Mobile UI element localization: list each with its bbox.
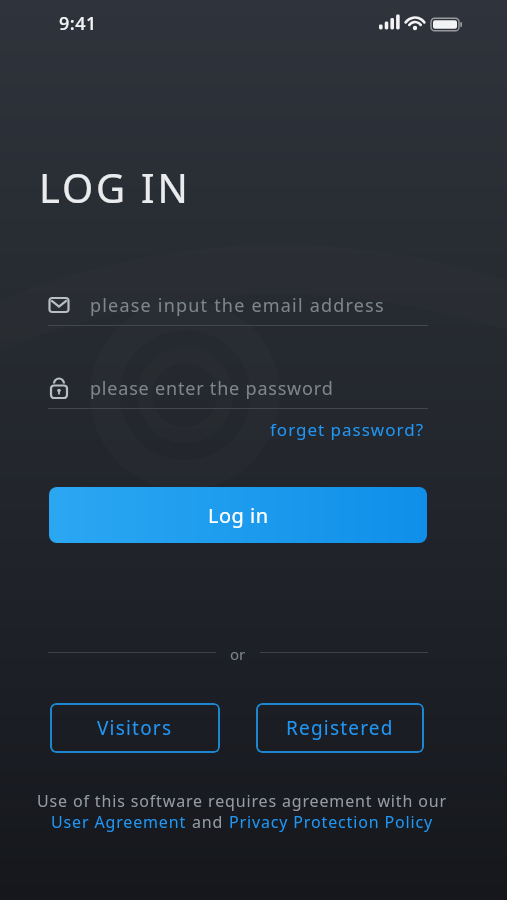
staticText: and (187, 811, 229, 833)
button[interactable]: Privacy Protection Policy (229, 811, 433, 833)
staticText: or (230, 644, 246, 660)
staticText: Log in (208, 502, 269, 529)
button[interactable]: Log in (49, 487, 427, 543)
staticText: Use of this software requires agreement … (37, 790, 447, 812)
staticText: 9:41 (59, 11, 97, 36)
button[interactable]: User Agreement (51, 811, 187, 833)
button[interactable]: Registered (256, 703, 424, 753)
button[interactable]: please input the email address (48, 292, 428, 318)
button[interactable]: please enter the password (48, 375, 428, 401)
staticText: Visitors (97, 715, 173, 741)
staticText: please enter the password (90, 376, 334, 401)
staticText: please input the email address (90, 293, 385, 318)
staticText: LOG IN (39, 160, 191, 214)
button[interactable]: Visitors (50, 703, 220, 753)
button[interactable]: forget password? (270, 418, 425, 441)
staticText: Registered (286, 715, 394, 741)
